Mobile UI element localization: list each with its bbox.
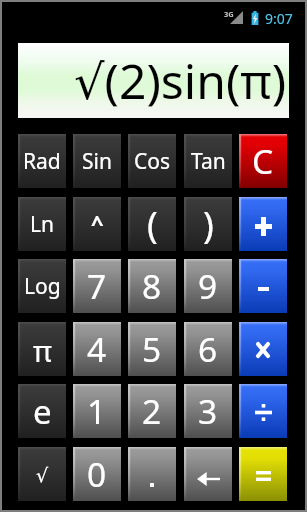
staticText: ( xyxy=(147,200,158,249)
button[interactable]: Sin xyxy=(73,134,121,188)
button[interactable]: 5 xyxy=(128,322,176,376)
staticText: 9 xyxy=(198,263,218,309)
staticText: Tan xyxy=(191,147,226,176)
button[interactable]: 1 xyxy=(73,384,121,438)
button[interactable]: 7 xyxy=(73,259,121,313)
button[interactable]: Tan xyxy=(184,134,232,188)
button[interactable]: 3 xyxy=(184,384,232,438)
staticText: √ xyxy=(36,464,49,486)
staticText: Log xyxy=(24,272,61,301)
staticText: Rad xyxy=(23,147,61,176)
button[interactable]: ^ xyxy=(73,197,121,251)
button[interactable]: 6 xyxy=(184,322,232,376)
staticText: 1 xyxy=(87,388,107,434)
button[interactable]: ( xyxy=(128,197,176,251)
staticText: 7 xyxy=(87,263,107,309)
button[interactable]: 0 xyxy=(73,447,121,501)
staticText: 5 xyxy=(142,326,162,372)
staticText: 8 xyxy=(142,263,162,309)
button[interactable]: 4 xyxy=(73,322,121,376)
button[interactable]: Rad xyxy=(18,134,66,188)
staticText: √(2)sin(π) xyxy=(74,48,287,113)
button[interactable]: Backspace xyxy=(184,447,232,501)
button[interactable]: Divide xyxy=(239,384,287,438)
button[interactable]: √ xyxy=(18,447,66,501)
staticText: 6 xyxy=(198,326,218,372)
staticText: 3 xyxy=(198,388,218,434)
staticText: e xyxy=(33,389,52,434)
button[interactable]: Minus xyxy=(239,259,287,313)
button[interactable]: Cos xyxy=(128,134,176,188)
staticText: 2 xyxy=(142,388,162,434)
staticText: C xyxy=(252,138,274,184)
staticText: ^ xyxy=(91,207,104,237)
button[interactable]: e xyxy=(18,384,66,438)
button[interactable]: C xyxy=(239,134,287,188)
button[interactable]: 2 xyxy=(128,384,176,438)
button[interactable]: ) xyxy=(184,197,232,251)
staticText: Sin xyxy=(82,147,112,176)
staticText: 4 xyxy=(87,326,107,372)
button[interactable]: π xyxy=(18,322,66,376)
staticText: π xyxy=(33,331,52,370)
staticText: 9:07 xyxy=(265,9,293,28)
button[interactable]: Multiply xyxy=(239,322,287,376)
button[interactable]: Log xyxy=(18,259,66,313)
button[interactable]: 8 xyxy=(128,259,176,313)
button[interactable]: 9 xyxy=(184,259,232,313)
staticText: 0 xyxy=(87,451,107,497)
button[interactable]: Decimal point xyxy=(128,447,176,501)
button[interactable]: Ln xyxy=(18,197,66,251)
staticText: ) xyxy=(203,200,214,249)
staticText: Cos xyxy=(134,147,171,176)
staticText: 3G xyxy=(224,9,234,19)
staticText: Ln xyxy=(30,210,54,239)
button[interactable]: Equals xyxy=(239,447,287,501)
button[interactable]: Plus xyxy=(239,197,287,251)
